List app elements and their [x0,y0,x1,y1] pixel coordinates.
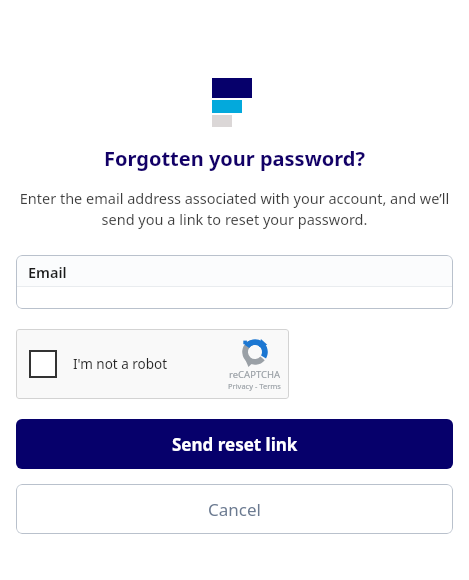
staticText: Email [28,262,67,282]
staticText: reCAPTCHA [229,368,281,381]
button[interactable]: Email [16,255,453,309]
button[interactable]: Send reset link [16,419,453,469]
staticText: Forgotten your password? [0,145,469,172]
staticText: I'm not a robot [73,355,168,373]
button[interactable]: Cancel [16,484,453,534]
button[interactable]: I'm not a robot checkbox [29,350,57,378]
staticText: Cancel [208,498,261,521]
staticText: Send reset link [172,433,298,456]
staticText: Enter the email address associated with … [18,188,451,230]
staticText: Privacy - Terms [228,381,281,391]
button[interactable]: I'm not a robot checkbox [16,329,289,399]
